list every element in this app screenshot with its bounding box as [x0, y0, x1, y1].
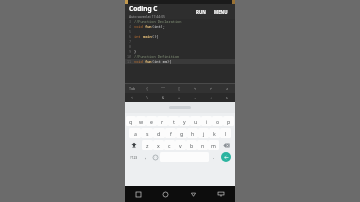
- button[interactable]: k: [209, 128, 220, 138]
- staticText: 9: [129, 49, 132, 54]
- button[interactable]: o: [212, 116, 223, 126]
- button[interactable]: Insert {: [140, 84, 155, 93]
- button[interactable]: i: [201, 116, 212, 126]
- staticText: ↺: [226, 87, 229, 91]
- staticText: j: [203, 130, 205, 137]
- button[interactable]: Home: [152, 186, 179, 202]
- staticText: ↰: [194, 87, 197, 91]
- button[interactable]: v: [175, 140, 186, 150]
- staticText: &: [162, 95, 165, 100]
- button[interactable]: b: [186, 140, 197, 150]
- staticText: k: [213, 130, 216, 137]
- staticText: g: [180, 130, 184, 137]
- button[interactable]: x: [153, 140, 164, 150]
- staticText: ↓: [210, 95, 213, 100]
- staticText: o: [216, 118, 220, 125]
- staticText: +: [178, 95, 181, 100]
- button[interactable]: s: [141, 128, 153, 138]
- button[interactable]: l: [220, 128, 231, 138]
- staticText: main: [143, 34, 152, 39]
- button[interactable]: MENU: [211, 7, 231, 17]
- button[interactable]: e: [146, 116, 157, 126]
- button[interactable]: n: [197, 140, 208, 150]
- staticText: void: [134, 59, 145, 64]
- button[interactable]: z: [142, 140, 153, 150]
- staticText: →: [194, 95, 197, 100]
- button[interactable]: Insert ↱: [203, 84, 219, 93]
- button[interactable]: Insert &: [155, 93, 171, 102]
- button[interactable]: Insert "": [155, 84, 171, 93]
- button[interactable]: Insert <: [125, 93, 140, 102]
- button[interactable]: r: [157, 116, 168, 126]
- staticText: //Function Declaration: [134, 19, 182, 24]
- button[interactable]: 3: [125, 19, 235, 83]
- staticText: x: [157, 142, 160, 149]
- button[interactable]: Insert [: [171, 84, 187, 93]
- staticText: e: [150, 118, 153, 125]
- staticText: int: [134, 34, 143, 39]
- button[interactable]: Back: [179, 186, 207, 202]
- staticText: .: [213, 154, 215, 160]
- staticText: ↱: [210, 87, 213, 91]
- staticText: \: [146, 95, 149, 100]
- button[interactable]: Insert ↺: [219, 84, 235, 93]
- staticText: r: [161, 118, 164, 125]
- staticText: (){: [152, 34, 159, 39]
- staticText: fun: [145, 24, 152, 29]
- staticText: 10: [127, 54, 132, 59]
- staticText: fun: [145, 59, 152, 64]
- staticText: h: [191, 130, 195, 137]
- button[interactable]: Insert →: [187, 93, 203, 102]
- button[interactable]: w: [136, 116, 146, 126]
- button[interactable]: h: [187, 128, 198, 138]
- button[interactable]: u: [190, 116, 201, 126]
- staticText: 6: [129, 34, 132, 39]
- button[interactable]: Recents: [125, 186, 152, 202]
- staticText: 11: [127, 59, 132, 64]
- staticText: "": [161, 86, 166, 91]
- staticText: i: [206, 118, 208, 125]
- button[interactable]: Shift: [126, 140, 142, 150]
- button[interactable]: Insert ↻: [219, 93, 235, 102]
- staticText: //Function Definition: [134, 54, 180, 59]
- staticText: m: [211, 142, 216, 149]
- staticText: c: [168, 142, 171, 149]
- button[interactable]: d: [153, 128, 165, 138]
- button[interactable]: Emoji: [150, 152, 160, 162]
- button[interactable]: Backspace: [219, 140, 234, 150]
- button[interactable]: RUN: [193, 7, 209, 17]
- button[interactable]: Insert \: [140, 93, 155, 102]
- button[interactable]: Enter: [218, 152, 234, 162]
- staticText: 3: [129, 19, 132, 24]
- button[interactable]: ,: [141, 152, 150, 162]
- staticText: s: [146, 130, 149, 137]
- staticText: u: [194, 118, 198, 125]
- staticText: {: [146, 86, 149, 91]
- staticText: MENU: [214, 9, 228, 15]
- button[interactable]: Insert Tab: [125, 84, 140, 93]
- button[interactable]: Insert +: [171, 93, 187, 102]
- staticText: b: [190, 142, 194, 149]
- button[interactable]: y: [179, 116, 190, 126]
- button[interactable]: p: [223, 116, 234, 126]
- staticText: 5: [129, 29, 132, 34]
- button[interactable]: g: [176, 128, 187, 138]
- button[interactable]: f: [165, 128, 176, 138]
- staticText: <: [131, 95, 134, 100]
- button[interactable]: .: [209, 152, 218, 162]
- button[interactable]: m: [208, 140, 219, 150]
- button[interactable]: j: [198, 128, 209, 138]
- button[interactable]: q: [126, 116, 136, 126]
- button[interactable]: Insert ↰: [187, 84, 203, 93]
- staticText: y: [183, 118, 186, 125]
- button[interactable]: ?123: [126, 152, 141, 162]
- staticText: w: [139, 118, 144, 125]
- staticText: RUN: [196, 9, 206, 15]
- staticText: a: [134, 130, 137, 137]
- button[interactable]: a: [129, 128, 141, 138]
- button[interactable]: t: [168, 116, 179, 126]
- button[interactable]: c: [164, 140, 175, 150]
- button[interactable]: Hide keyboard: [207, 186, 235, 202]
